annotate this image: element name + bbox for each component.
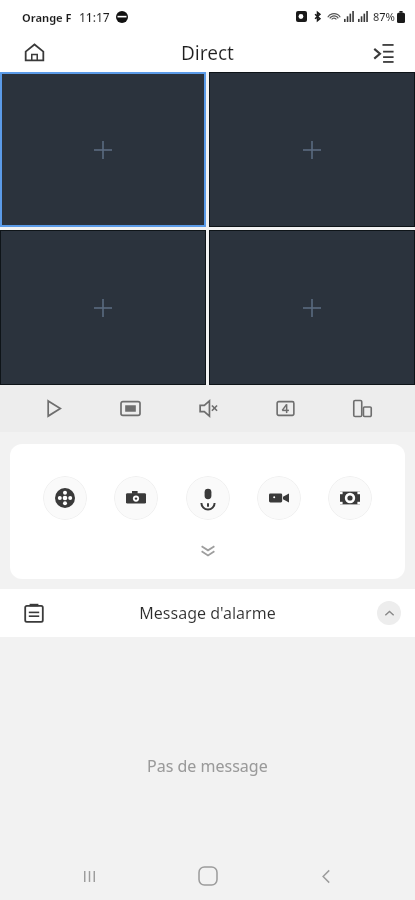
button[interactable]: Liste des appareils — [361, 33, 405, 72]
staticText: 11:17 — [79, 9, 110, 25]
button[interactable]: Contrôle PTZ — [328, 476, 372, 520]
button[interactable]: Lecture — [29, 385, 77, 432]
staticText: Message d'alarme — [139, 602, 276, 624]
button[interactable]: Enregistrer vidéo — [257, 476, 301, 520]
staticText: Direct — [181, 40, 234, 66]
button[interactable]: Réduire — [377, 601, 401, 625]
button[interactable]: Plein écran — [338, 385, 386, 432]
staticText: Orange F — [22, 10, 72, 25]
button[interactable]: Capture photo — [114, 476, 158, 520]
staticText: 87% — [373, 9, 395, 24]
button[interactable]: Applications récentes — [59, 852, 119, 900]
button[interactable]: Son coupé — [184, 385, 232, 432]
button[interactable]: Micro — [186, 476, 230, 520]
button[interactable]: Qualité SD — [106, 385, 154, 432]
button[interactable]: Lecture enregistrement — [43, 476, 87, 520]
button[interactable]: Retour — [296, 852, 356, 900]
button[interactable]: Message d'alarme — [0, 589, 415, 637]
button[interactable]: Accueil — [178, 852, 238, 900]
button[interactable]: Disposition 4 canaux — [261, 385, 309, 432]
staticText: Pas de message — [147, 755, 268, 777]
button[interactable]: Accueil — [12, 33, 56, 72]
button[interactable]: Afficher plus — [188, 531, 228, 571]
